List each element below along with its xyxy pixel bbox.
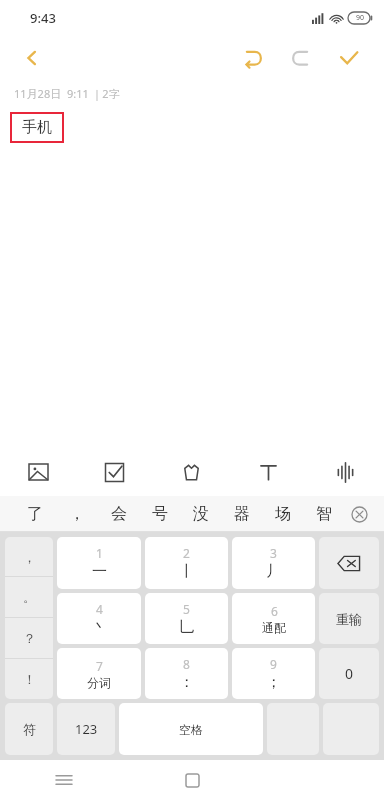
button[interactable]: Template xyxy=(153,448,230,496)
staticText: 6 xyxy=(271,603,278,619)
staticText: 器 xyxy=(234,504,250,524)
staticText: 11月28日 9:11 ｜2字 xyxy=(14,86,120,101)
staticText: ！ xyxy=(23,671,36,687)
staticText: 。 xyxy=(23,589,36,605)
button[interactable]: 符 xyxy=(5,703,53,755)
staticText: 1 xyxy=(96,545,103,561)
button[interactable]: Menu xyxy=(0,760,128,800)
button[interactable]: Backspace xyxy=(319,537,379,589)
button[interactable]: 5 xyxy=(145,593,228,644)
button[interactable]: Checklist xyxy=(76,448,153,496)
staticText: 0 xyxy=(345,664,354,683)
button[interactable]: 了 xyxy=(14,496,56,532)
staticText: 2 xyxy=(183,545,190,561)
staticText: 场 xyxy=(275,504,291,524)
button[interactable]: 号 xyxy=(139,496,180,532)
button[interactable]: Redo xyxy=(280,37,322,79)
staticText: 通配 xyxy=(262,620,286,635)
button[interactable]: ？ xyxy=(5,618,53,658)
staticText: 会 xyxy=(111,504,127,524)
staticText: 123 xyxy=(75,720,98,738)
button[interactable]: Text style xyxy=(230,448,307,496)
button[interactable]: 器 xyxy=(221,496,262,532)
button[interactable]: 8 xyxy=(145,648,228,699)
staticText: 乚 xyxy=(179,618,194,637)
button[interactable]: 0 xyxy=(319,648,379,699)
staticText: 9 xyxy=(270,656,277,672)
staticText: 手机 xyxy=(22,118,52,137)
button[interactable]: Voice xyxy=(307,448,384,496)
button[interactable]: Recents xyxy=(128,760,256,800)
button[interactable]: 会 xyxy=(98,496,139,532)
button[interactable]: 场 xyxy=(262,496,303,532)
button[interactable]: Close keyboard xyxy=(344,496,374,532)
staticText: 一 xyxy=(92,562,107,581)
staticText: 重输 xyxy=(336,611,362,627)
staticText: 符 xyxy=(23,721,36,737)
staticText: 号 xyxy=(152,504,168,524)
button[interactable]: 空格 xyxy=(119,703,263,755)
staticText: ； xyxy=(266,673,281,692)
staticText: 丨 xyxy=(179,562,194,581)
button[interactable]: 4 xyxy=(57,593,141,644)
button[interactable]: 9 xyxy=(232,648,315,699)
staticText: 丿 xyxy=(266,562,281,581)
staticText: 3 xyxy=(270,545,277,561)
button[interactable]: 。 xyxy=(5,577,53,617)
button[interactable]: Done xyxy=(328,37,370,79)
button[interactable]: 6 xyxy=(232,593,315,644)
button[interactable]: Undo xyxy=(232,37,274,79)
button[interactable]: Back xyxy=(12,38,52,78)
button[interactable]: ！ xyxy=(5,659,53,699)
staticText: 了 xyxy=(27,504,43,524)
staticText: 8 xyxy=(183,656,190,672)
staticText: ， xyxy=(69,504,85,524)
staticText: 7 xyxy=(96,658,103,674)
staticText: 分词 xyxy=(87,675,111,690)
staticText: ？ xyxy=(23,630,36,646)
button[interactable]: 没 xyxy=(180,496,221,532)
staticText: 4 xyxy=(96,601,103,617)
button[interactable]: 重输 xyxy=(319,593,379,644)
button[interactable]: 3 xyxy=(232,537,315,589)
staticText: 空格 xyxy=(179,722,203,737)
button[interactable]: 7 xyxy=(57,648,141,699)
staticText: 丶 xyxy=(92,618,107,637)
button[interactable]: ， xyxy=(56,496,98,532)
button[interactable]: Insert image xyxy=(0,448,76,496)
staticText: 智 xyxy=(316,504,332,524)
button[interactable]: 1 xyxy=(57,537,141,589)
button[interactable]: 智 xyxy=(303,496,344,532)
button[interactable]: 手机 xyxy=(22,118,52,137)
staticText: 5 xyxy=(183,601,190,617)
staticText: ， xyxy=(23,549,36,565)
button[interactable]: 2 xyxy=(145,537,228,589)
staticText: 90 xyxy=(356,13,365,23)
staticText: 没 xyxy=(193,504,209,524)
button[interactable]: ， xyxy=(5,537,53,576)
staticText: 9:43 xyxy=(30,9,56,27)
button[interactable]: 123 xyxy=(57,703,115,755)
staticText: ： xyxy=(179,673,194,692)
